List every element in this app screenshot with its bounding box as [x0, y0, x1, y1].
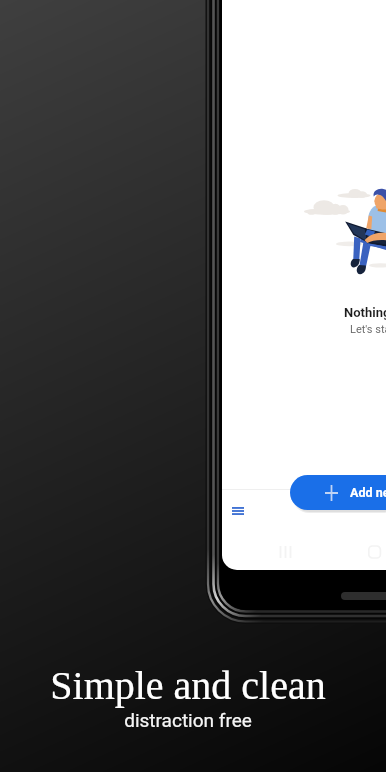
button[interactable]: Add new — [290, 475, 386, 510]
staticText: Let's start adding — [350, 323, 386, 336]
staticText: distraction free — [124, 709, 252, 731]
staticText: Simple and clean — [50, 663, 326, 707]
button[interactable]: Open navigation menu — [218, 491, 258, 531]
staticText: Add new — [350, 485, 386, 500]
staticText: Nothing to do — [344, 305, 386, 320]
